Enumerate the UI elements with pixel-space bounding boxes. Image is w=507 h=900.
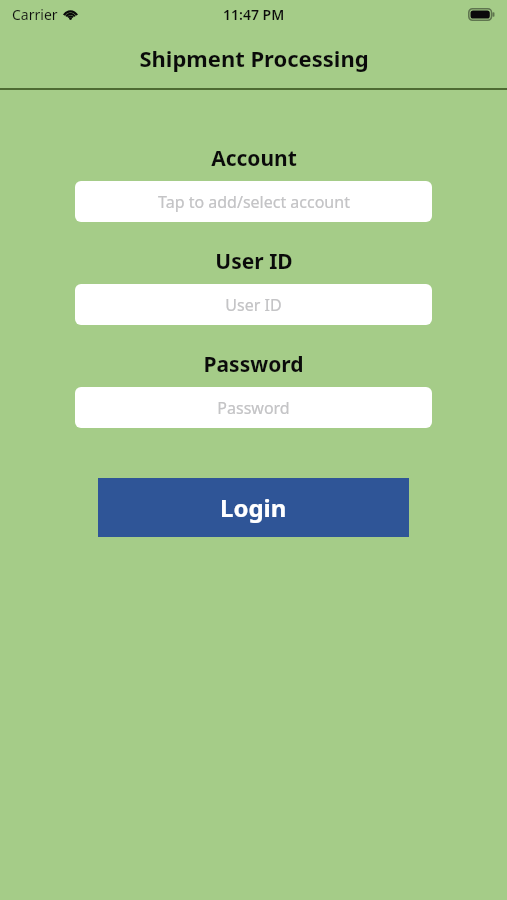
staticText: Carrier [12,5,58,24]
staticText: Shipment Processing [139,43,369,73]
staticText: Password [217,397,290,419]
staticText: Account [211,144,297,173]
button[interactable]: Login [98,478,409,537]
staticText: User ID [225,294,282,316]
staticText: Tap to add/select account [158,191,350,213]
button[interactable]: Tap to add/select account [75,181,432,222]
staticText: Login [220,491,287,524]
button[interactable]: User ID [75,284,432,325]
other: Battery full [468,8,495,21]
other: Wi-Fi signal [63,6,78,21]
staticText: Password [203,350,304,379]
button[interactable]: Password [75,387,432,428]
staticText: User ID [215,247,293,276]
staticText: 11:47 PM [223,5,285,24]
